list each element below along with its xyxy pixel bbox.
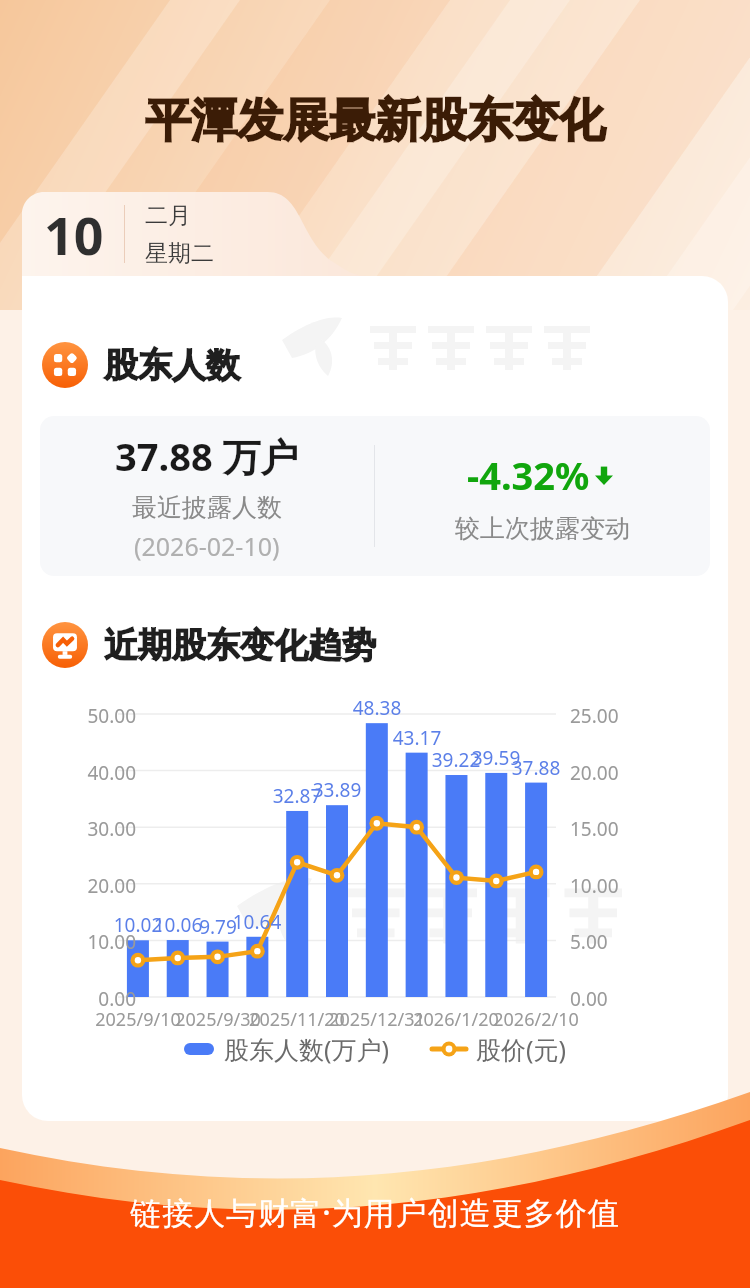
staticText: 40.00 xyxy=(52,760,136,786)
staticText: 20.00 xyxy=(570,760,650,786)
staticText: 2025/9/30 xyxy=(163,1007,273,1032)
button[interactable]: 37.88 万户 xyxy=(40,416,710,576)
button[interactable]: 近期股东变化趋势 xyxy=(42,622,376,668)
staticText: 39.59 xyxy=(464,745,528,771)
staticText: 25.00 xyxy=(570,703,650,729)
staticText: 43.17 xyxy=(385,725,449,751)
staticText: 37.88 万户 xyxy=(115,430,299,482)
staticText: 15.00 xyxy=(570,816,650,842)
staticText: 37.88 xyxy=(504,755,568,781)
staticText: 32.87 xyxy=(265,783,329,809)
button[interactable]: 股东人数 xyxy=(42,342,240,388)
staticText: 48.38 xyxy=(345,695,409,721)
staticText: 10.00 xyxy=(52,929,136,955)
staticText: 二月 xyxy=(145,201,191,230)
staticText: 较上次披露变动 xyxy=(455,513,630,544)
staticText: -4.32% xyxy=(467,449,590,501)
staticText: 最近披露人数 xyxy=(132,492,282,523)
staticText: 星期二 xyxy=(145,239,214,268)
button[interactable]: 50.00 xyxy=(22,686,728,1026)
staticText: 39.22 xyxy=(424,747,488,773)
staticText: 2026/1/20 xyxy=(401,1007,511,1032)
staticText: 10.06 xyxy=(146,912,210,938)
staticText: 平潭发展最新股东变化 xyxy=(0,92,750,150)
staticText: 50.00 xyxy=(52,703,136,729)
staticText: 10.64 xyxy=(225,909,289,935)
staticText: 10 xyxy=(44,199,104,270)
staticText: 股价(元) xyxy=(476,1032,567,1066)
staticText: 2026/2/10 xyxy=(481,1007,591,1032)
other: 近期股东变化趋势 xyxy=(42,622,88,668)
staticText: (2026-02-10) xyxy=(134,529,280,563)
staticText: 9.79 xyxy=(186,914,250,940)
staticText: 10.02 xyxy=(106,912,170,938)
staticText: 0.00 xyxy=(52,986,136,1012)
staticText: 5.00 xyxy=(570,929,650,955)
staticText: 0.00 xyxy=(570,986,650,1012)
staticText: 33.89 xyxy=(305,777,369,803)
staticText: 链接人与财富·为用户创造更多价值 xyxy=(0,1191,750,1233)
staticText: 30.00 xyxy=(52,816,136,842)
staticText: 2025/12/31 xyxy=(322,1007,432,1032)
other: 股东人数 xyxy=(42,342,88,388)
staticText: 2025/9/10 xyxy=(83,1007,193,1032)
staticText: 2025/11/20 xyxy=(242,1007,352,1032)
staticText: 10.00 xyxy=(570,873,650,899)
staticText: 近期股东变化趋势 xyxy=(104,624,376,667)
staticText: 股东人数 xyxy=(104,344,240,387)
staticText: 20.00 xyxy=(52,873,136,899)
staticText: 股东人数(万户) xyxy=(224,1032,390,1066)
